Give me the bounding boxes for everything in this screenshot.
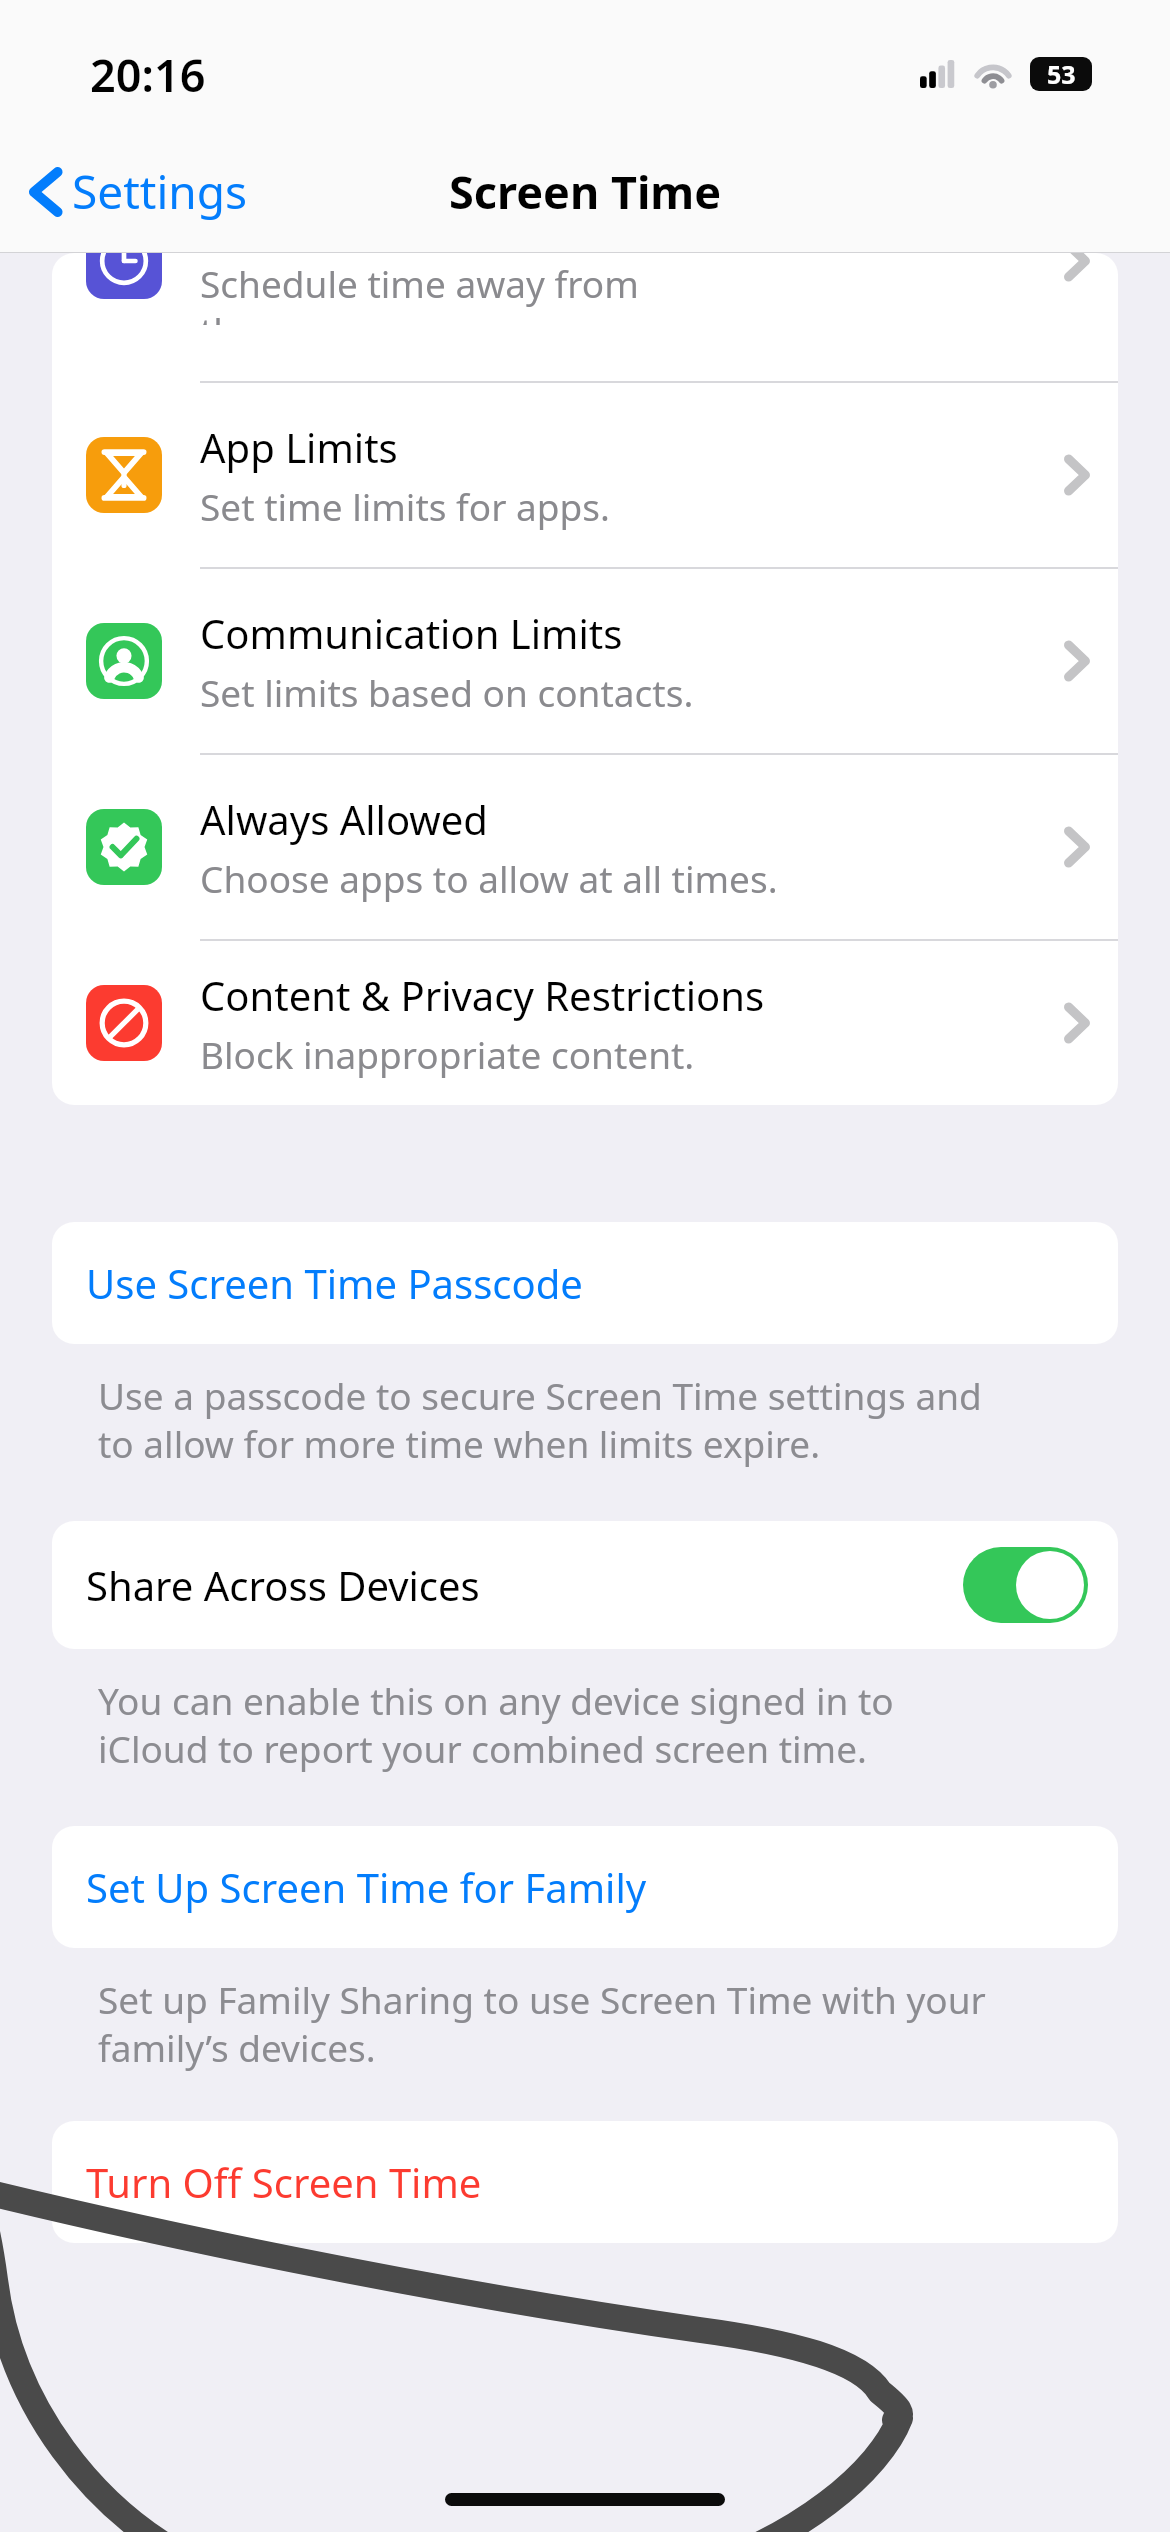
button[interactable]: Settings [22,152,256,231]
staticText: Set Up Screen Time for Family [86,1860,647,1914]
staticText: Share Across Devices [86,1558,480,1612]
staticText: Set limits based on contacts. [200,667,694,717]
button[interactable]: Downtime [52,253,1118,325]
staticText: Screen Time [449,161,722,222]
button[interactable]: Use Screen Time Passcode [52,1222,1118,1344]
staticText: Content & Privacy Restrictions [200,968,765,1022]
staticText: 53 [1047,57,1076,91]
button[interactable]: Content & Privacy Restrictions [52,941,1118,1105]
staticText: You can enable this on any device signed… [98,1675,894,1774]
staticText: Use Screen Time Passcode [86,1256,583,1310]
staticText: Set time limits for apps. [200,481,610,531]
staticText: Choose apps to allow at all times. [200,853,778,903]
staticText: Schedule time away from the screen. [200,258,639,325]
staticText: Set up Family Sharing to use Screen Time… [98,1974,986,2073]
staticText: 20:16 [90,44,206,105]
button[interactable]: Always Allowed [52,755,1118,939]
staticText: Settings [72,160,248,223]
staticText: Turn Off Screen Time [86,2155,482,2209]
staticText: Block inappropriate content. [200,1029,695,1079]
button[interactable]: App Limits [52,383,1118,567]
staticText: Use a passcode to secure Screen Time set… [98,1370,982,1469]
button[interactable]: Share Across Devices toggle [963,1547,1088,1623]
button[interactable]: Turn Off Screen Time [52,2121,1118,2243]
staticText: App Limits [200,420,398,474]
button[interactable]: Communication Limits [52,569,1118,753]
staticText: Always Allowed [200,792,488,846]
button[interactable]: Share Across Devices [52,1521,1118,1649]
button[interactable]: Set Up Screen Time for Family [52,1826,1118,1948]
staticText: Communication Limits [200,606,623,660]
